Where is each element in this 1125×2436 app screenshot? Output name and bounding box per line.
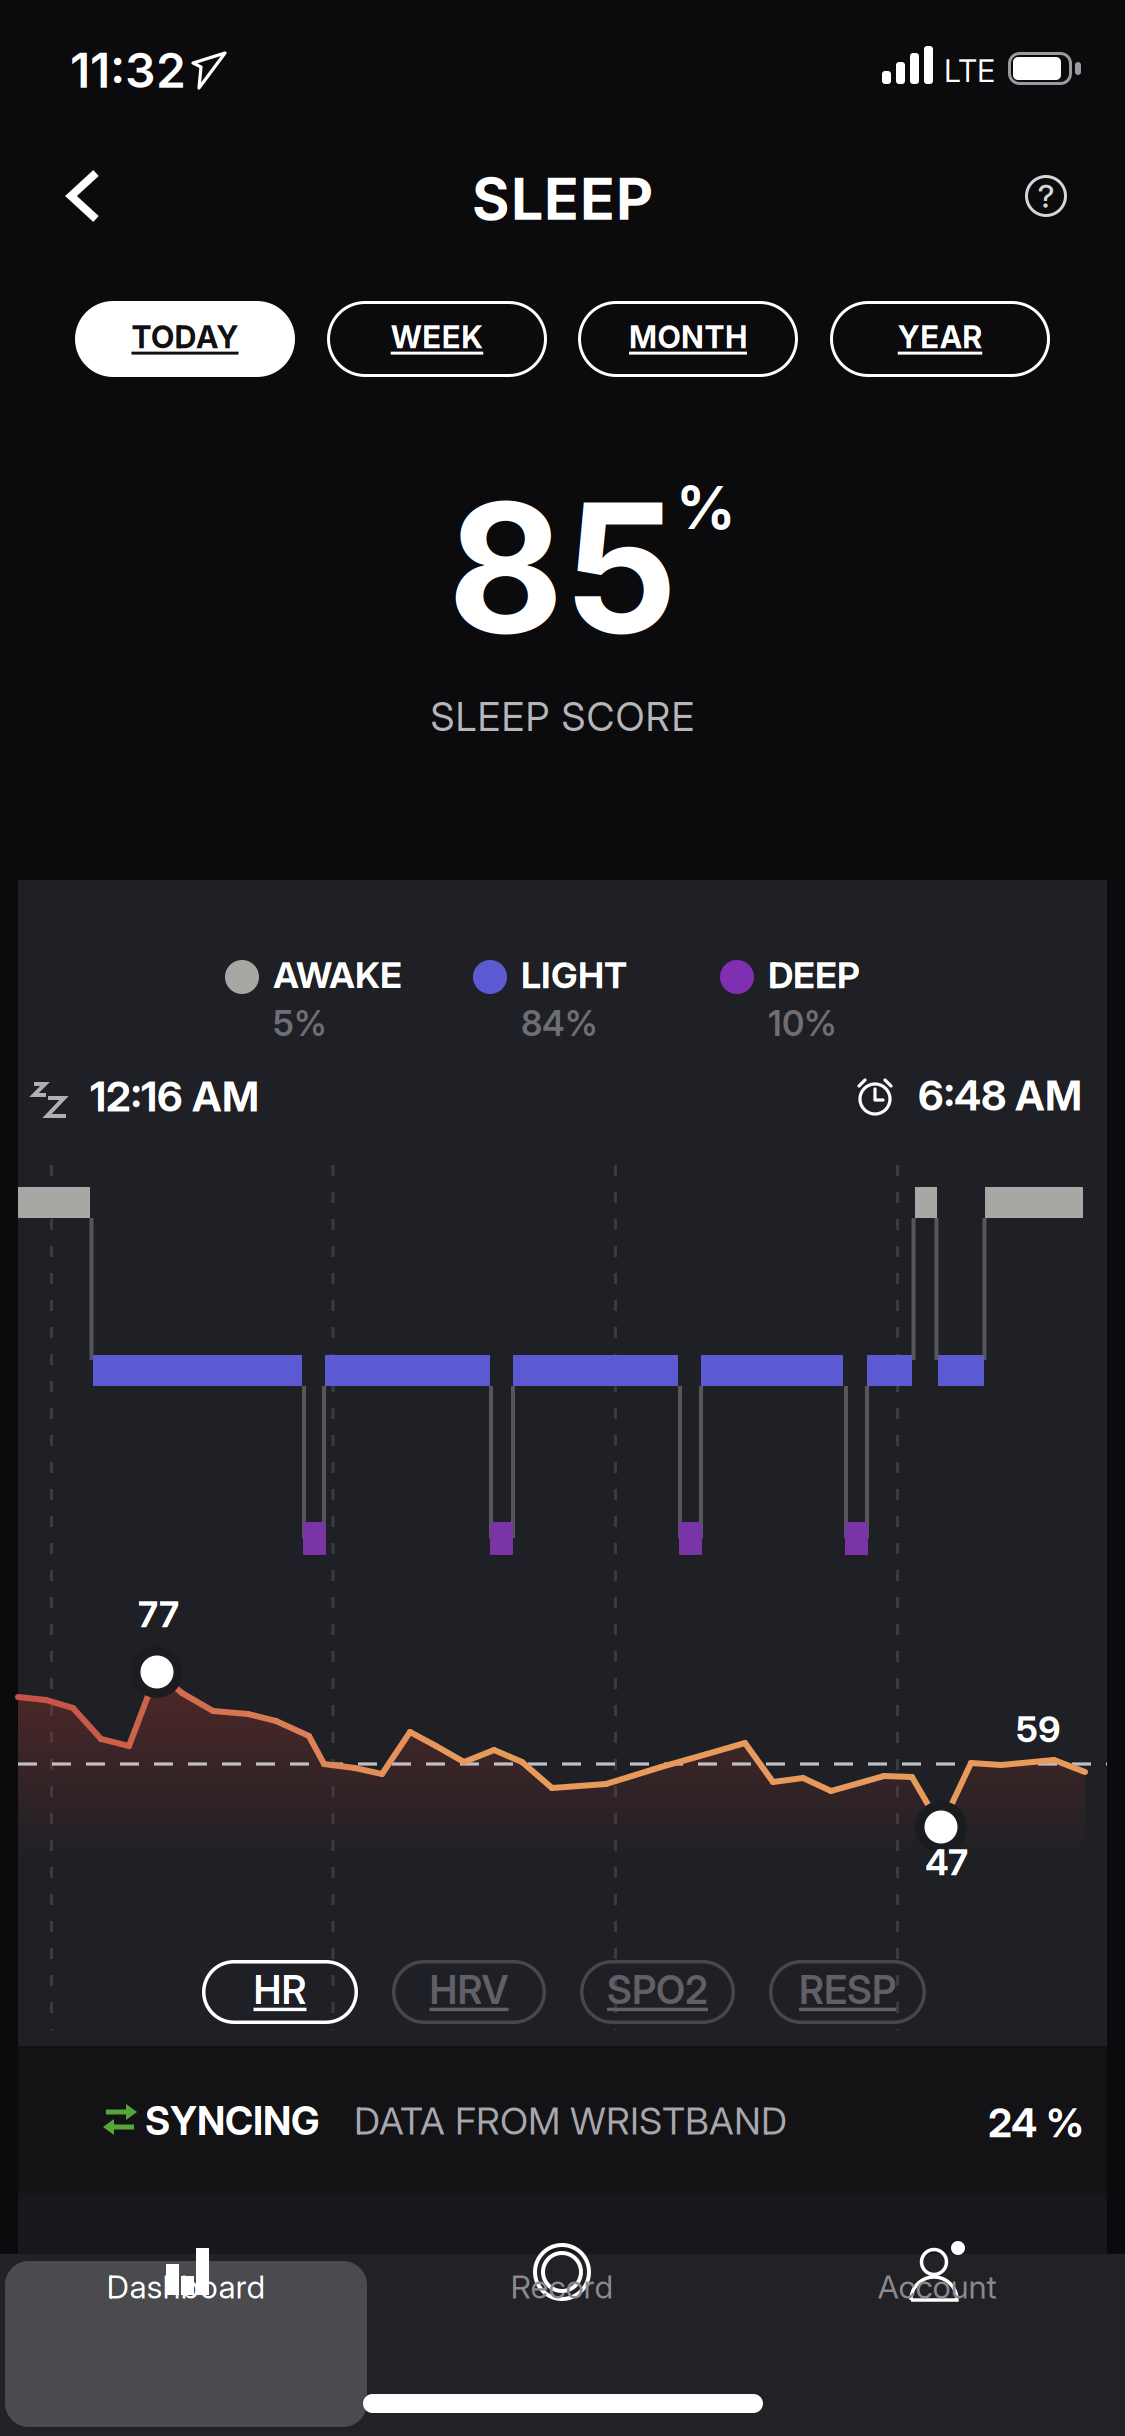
button[interactable]: Dashboard: [16, 2218, 356, 2348]
staticText: 84%: [521, 1003, 598, 1044]
staticText: ?: [1037, 177, 1054, 215]
staticText: 5%: [273, 1003, 327, 1044]
staticText: 11:32: [70, 42, 186, 99]
staticText: LIGHT: [521, 954, 627, 996]
staticText: 85: [447, 462, 677, 673]
staticText: HR: [253, 1967, 306, 2013]
staticText: SYNCING: [145, 2098, 320, 2144]
staticText: TODAY: [131, 319, 238, 355]
staticText: 77: [138, 1593, 179, 1635]
staticText: DATA FROM WRISTBAND: [354, 2099, 787, 2143]
button[interactable]: ?: [1016, 166, 1076, 226]
button[interactable]: TODAY: [75, 301, 295, 377]
staticText: 10%: [768, 1003, 837, 1044]
staticText: MONTH: [629, 319, 747, 355]
button[interactable]: MONTH: [578, 301, 798, 377]
button[interactable]: HR: [202, 1960, 358, 2024]
staticText: 6:48 AM: [918, 1071, 1082, 1120]
staticText: AWAKE: [273, 954, 402, 996]
staticText: 24 %: [988, 2099, 1084, 2146]
staticText: Dashboard: [106, 2268, 265, 2306]
staticText: DEEP: [768, 954, 860, 996]
button[interactable]: WEEK: [327, 301, 547, 377]
staticText: SLEEP: [472, 165, 653, 233]
button[interactable]: RESP: [769, 1960, 926, 2024]
staticText: SPO2: [607, 1967, 708, 2013]
staticText: YEAR: [898, 319, 982, 355]
button[interactable]: YEAR: [830, 301, 1050, 377]
staticText: 12:16 AM: [90, 1072, 259, 1121]
button[interactable]: [55, 161, 125, 231]
staticText: 47: [925, 1841, 968, 1883]
staticText: %: [676, 473, 736, 542]
staticText: WEEK: [391, 319, 483, 355]
staticText: RESP: [799, 1967, 896, 2013]
staticText: Account: [877, 2268, 996, 2306]
staticText: 59: [1016, 1708, 1061, 1750]
staticText: SLEEP SCORE: [430, 694, 694, 740]
button[interactable]: HRV: [392, 1960, 546, 2024]
staticText: LTE: [944, 53, 995, 89]
button[interactable]: Account: [767, 2218, 1107, 2348]
staticText: Record: [510, 2268, 613, 2306]
button[interactable]: Record: [392, 2218, 732, 2348]
staticText: HRV: [429, 1967, 508, 2013]
button[interactable]: SPO2: [580, 1960, 735, 2024]
